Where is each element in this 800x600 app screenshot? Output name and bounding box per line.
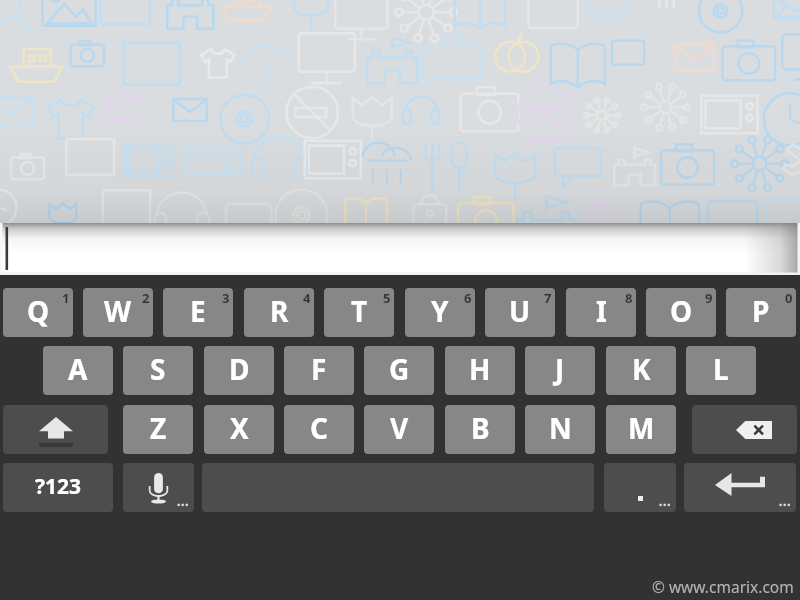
button[interactable]: Shift [3, 405, 108, 454]
button[interactable]: I [566, 288, 636, 337]
staticText: ?123 [35, 472, 82, 501]
button[interactable]: Enter [684, 463, 796, 512]
button[interactable]: P [726, 288, 796, 337]
staticText: L [713, 350, 729, 388]
button[interactable]: U [485, 288, 555, 337]
staticText: R [270, 292, 289, 330]
button[interactable]: A [43, 346, 113, 395]
staticText: 0 [785, 289, 793, 307]
staticText: K [632, 350, 651, 388]
staticText: T [351, 292, 368, 330]
staticText: E [190, 292, 206, 330]
staticText: O [670, 292, 693, 330]
button[interactable]: Y [405, 288, 475, 337]
staticText: B [471, 409, 490, 447]
button[interactable]: Backspace [692, 405, 797, 454]
staticText: M [628, 409, 655, 447]
button[interactable]: Q [3, 288, 73, 337]
button[interactable]: O [646, 288, 716, 337]
staticText: N [549, 409, 572, 447]
button[interactable]: Z [123, 405, 193, 454]
button[interactable]: N [525, 405, 595, 454]
staticText: G [389, 350, 410, 388]
button[interactable]: Voice input [123, 463, 194, 512]
button[interactable]: X [204, 405, 274, 454]
button[interactable]: J [525, 346, 595, 395]
staticText: 9 [705, 289, 713, 307]
staticText: 5 [383, 289, 391, 307]
staticText: A [68, 350, 88, 388]
staticText: 3 [222, 289, 230, 307]
button[interactable]: H [445, 346, 515, 395]
staticText: Q [27, 292, 50, 330]
staticText: H [469, 350, 491, 388]
staticText: 7 [544, 289, 552, 307]
staticText: U [509, 292, 531, 330]
button[interactable]: L [686, 346, 756, 395]
staticText: 8 [625, 289, 633, 307]
staticText: P [752, 292, 770, 330]
staticText: V [390, 409, 409, 447]
button[interactable]: T [324, 288, 394, 337]
staticText: C [310, 409, 328, 447]
button[interactable]: E [163, 288, 233, 337]
staticText: D [229, 350, 250, 388]
staticText: Y [431, 292, 449, 330]
button[interactable]: S [123, 346, 193, 395]
button[interactable]: R [244, 288, 314, 337]
button[interactable]: V [364, 405, 434, 454]
staticText: J [555, 350, 565, 388]
button[interactable]: K [606, 346, 676, 395]
button[interactable]: F [284, 346, 354, 395]
staticText: Z [150, 409, 167, 447]
button[interactable] [604, 463, 676, 512]
staticText: 6 [464, 289, 472, 307]
button[interactable]: C [284, 405, 354, 454]
button[interactable]: W [83, 288, 153, 337]
staticText: 1 [62, 289, 70, 307]
staticText: 4 [303, 289, 311, 307]
staticText: 2 [142, 289, 150, 307]
button[interactable]: G [364, 346, 434, 395]
button[interactable]: D [204, 346, 274, 395]
button[interactable]: B [445, 405, 515, 454]
staticText: S [150, 350, 166, 388]
staticText: X [230, 409, 249, 447]
button[interactable]: M [606, 405, 676, 454]
staticText: I [596, 292, 607, 330]
staticText: F [311, 350, 327, 388]
button[interactable]: ?123 [3, 463, 113, 512]
staticText: © www.cmarix.com [652, 576, 794, 597]
staticText: W [104, 292, 132, 330]
